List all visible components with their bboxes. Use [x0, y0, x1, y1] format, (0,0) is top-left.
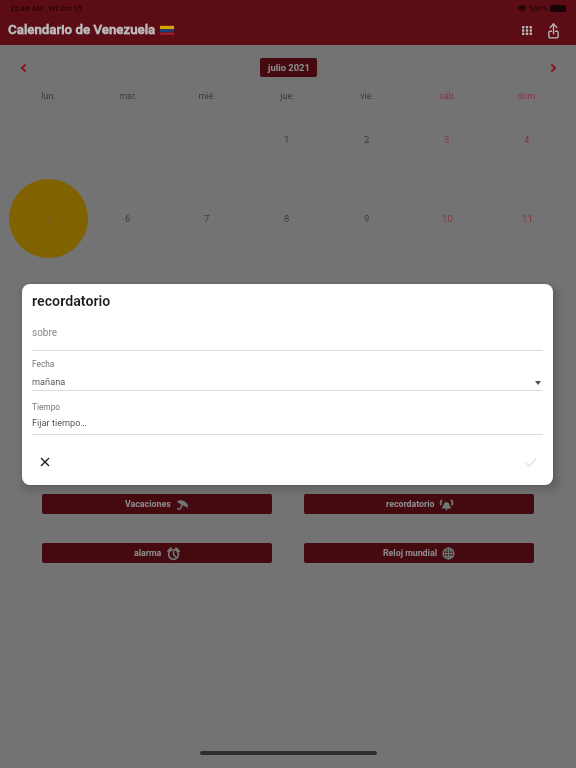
staticText: 7	[204, 213, 210, 224]
staticText: 1	[284, 134, 290, 145]
button[interactable]: recordatorio	[304, 494, 534, 514]
staticText: 5	[46, 213, 52, 224]
staticText: 10	[442, 213, 453, 224]
staticText: Vacaciones	[125, 499, 171, 509]
staticText: 3	[444, 134, 450, 145]
button[interactable]: Reloj mundial	[304, 543, 534, 563]
button[interactable]: Next month	[544, 59, 562, 77]
staticText: dom.	[517, 91, 538, 102]
staticText: Fecha	[32, 359, 55, 369]
staticText: sobre	[32, 327, 58, 339]
button[interactable]: Choose date	[530, 375, 546, 391]
staticText: julio 2021	[268, 62, 310, 73]
staticText: 12:46 AM Fri Oct 15	[10, 4, 83, 13]
button[interactable]: Vacaciones	[42, 494, 272, 514]
staticText: mié.	[198, 91, 216, 102]
staticText: Calendario de Venezuela	[8, 22, 156, 38]
staticText: 4	[524, 134, 530, 145]
staticText: mar.	[119, 91, 137, 102]
staticText: recordatorio	[386, 499, 435, 509]
staticText: 11	[522, 213, 533, 224]
staticText: 9	[364, 213, 370, 224]
button[interactable]: julio 2021	[260, 58, 317, 77]
staticText: sáb.	[439, 91, 456, 102]
staticText: mañana	[32, 376, 66, 387]
staticText: lun.	[41, 91, 56, 102]
staticText: 8	[284, 213, 290, 224]
button[interactable]: 5	[9, 179, 88, 258]
button[interactable]: Confirm	[519, 450, 543, 474]
staticText: vie.	[360, 91, 374, 102]
staticText: Tiempo	[32, 402, 61, 412]
staticText: Fijar tiempo…	[32, 417, 87, 428]
staticText: alarma	[134, 548, 162, 558]
staticText: jue.	[280, 91, 295, 102]
staticText: 100%	[529, 4, 548, 13]
button[interactable]: Share	[541, 18, 565, 42]
staticText: recordatorio	[32, 293, 111, 310]
button[interactable]: Previous month	[14, 59, 32, 77]
button[interactable]: alarma	[42, 543, 272, 563]
staticText: 6	[125, 213, 131, 224]
staticText: Reloj mundial	[383, 548, 437, 558]
button[interactable]: Cancel	[33, 450, 57, 474]
staticText: 2	[364, 134, 370, 145]
button[interactable]: Apps	[515, 18, 539, 42]
